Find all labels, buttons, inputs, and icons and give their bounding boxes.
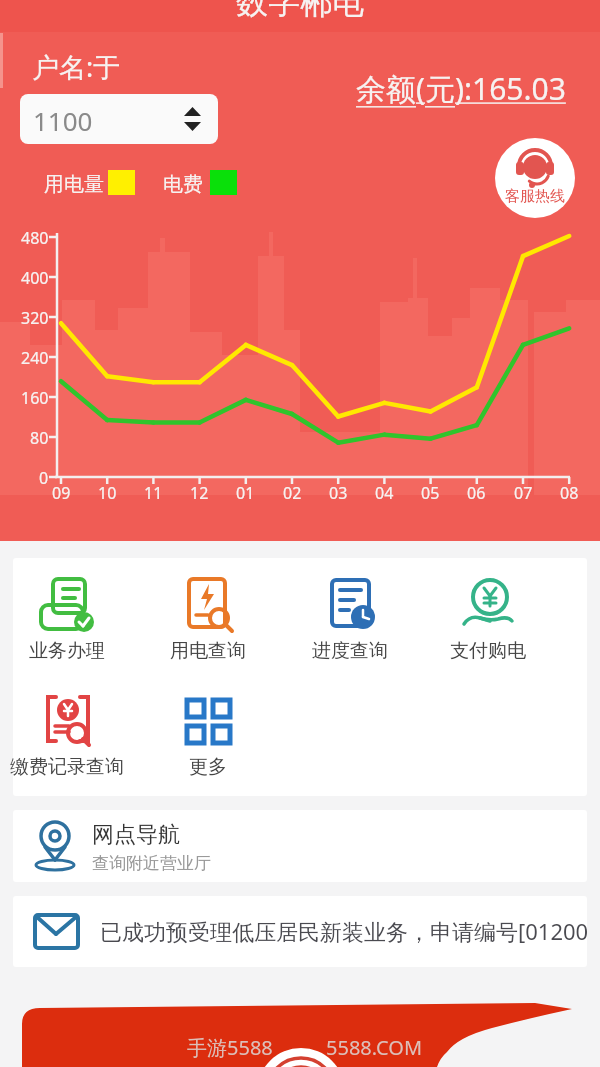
staticText: 480 bbox=[21, 227, 49, 249]
staticText: 400 bbox=[21, 267, 49, 289]
staticText: 320 bbox=[21, 307, 49, 329]
staticText: 客服热线 bbox=[505, 187, 565, 206]
staticText: 余额(元):165.03 bbox=[356, 68, 566, 109]
button[interactable]: 1100 bbox=[20, 94, 218, 144]
button[interactable]: 进度查询 bbox=[280, 577, 420, 663]
staticText: 用电查询 bbox=[170, 639, 246, 663]
staticText: 160 bbox=[21, 387, 49, 409]
staticText: 5588.COM bbox=[326, 1034, 423, 1061]
staticText: 240 bbox=[21, 347, 49, 369]
staticText: 09 bbox=[52, 482, 71, 504]
staticText: 户名:于 bbox=[32, 48, 121, 85]
button[interactable]: 业务办理 bbox=[0, 577, 137, 663]
button[interactable]: 更多 bbox=[138, 693, 278, 779]
button[interactable]: 客服热线 bbox=[495, 138, 575, 218]
staticText: 数字郴电 bbox=[236, 0, 364, 22]
staticText: 已成功预受理低压居民新装业务，申请编号[01200 bbox=[100, 916, 587, 946]
button[interactable] bbox=[22, 1003, 578, 1067]
staticText: 10 bbox=[98, 482, 117, 504]
staticText: 手游5588 bbox=[187, 1034, 273, 1061]
staticText: 更多 bbox=[189, 755, 227, 779]
staticText: 02 bbox=[283, 482, 302, 504]
staticText: 网点导航 bbox=[92, 821, 180, 849]
staticText: 03 bbox=[329, 482, 348, 504]
button[interactable]: 网点导航 bbox=[13, 810, 587, 882]
button[interactable]: 已成功预受理低压居民新装业务，申请编号[01200 bbox=[13, 896, 587, 967]
staticText: 08 bbox=[560, 482, 579, 504]
staticText: 缴费记录查询 bbox=[10, 755, 124, 779]
button[interactable]: 支付购电 bbox=[418, 577, 558, 663]
button[interactable]: 缴费记录查询 bbox=[0, 693, 137, 779]
staticText: 04 bbox=[375, 482, 394, 504]
staticText: 01 bbox=[236, 482, 255, 504]
staticText: 1100 bbox=[33, 103, 93, 138]
staticText: 查询附近营业厅 bbox=[92, 853, 211, 874]
staticText: 用电量 bbox=[44, 172, 104, 197]
staticText: 11 bbox=[144, 482, 163, 504]
staticText: 支付购电 bbox=[450, 639, 526, 663]
staticText: 05 bbox=[421, 482, 440, 504]
staticText: 06 bbox=[467, 482, 486, 504]
staticText: 12 bbox=[190, 482, 209, 504]
staticText: 0 bbox=[39, 467, 49, 489]
staticText: 07 bbox=[514, 482, 533, 504]
staticText: 电费 bbox=[163, 172, 203, 197]
button[interactable]: 用电查询 bbox=[138, 577, 278, 663]
staticText: 进度查询 bbox=[312, 639, 388, 663]
staticText: 业务办理 bbox=[29, 639, 105, 663]
staticText: 80 bbox=[30, 427, 49, 449]
